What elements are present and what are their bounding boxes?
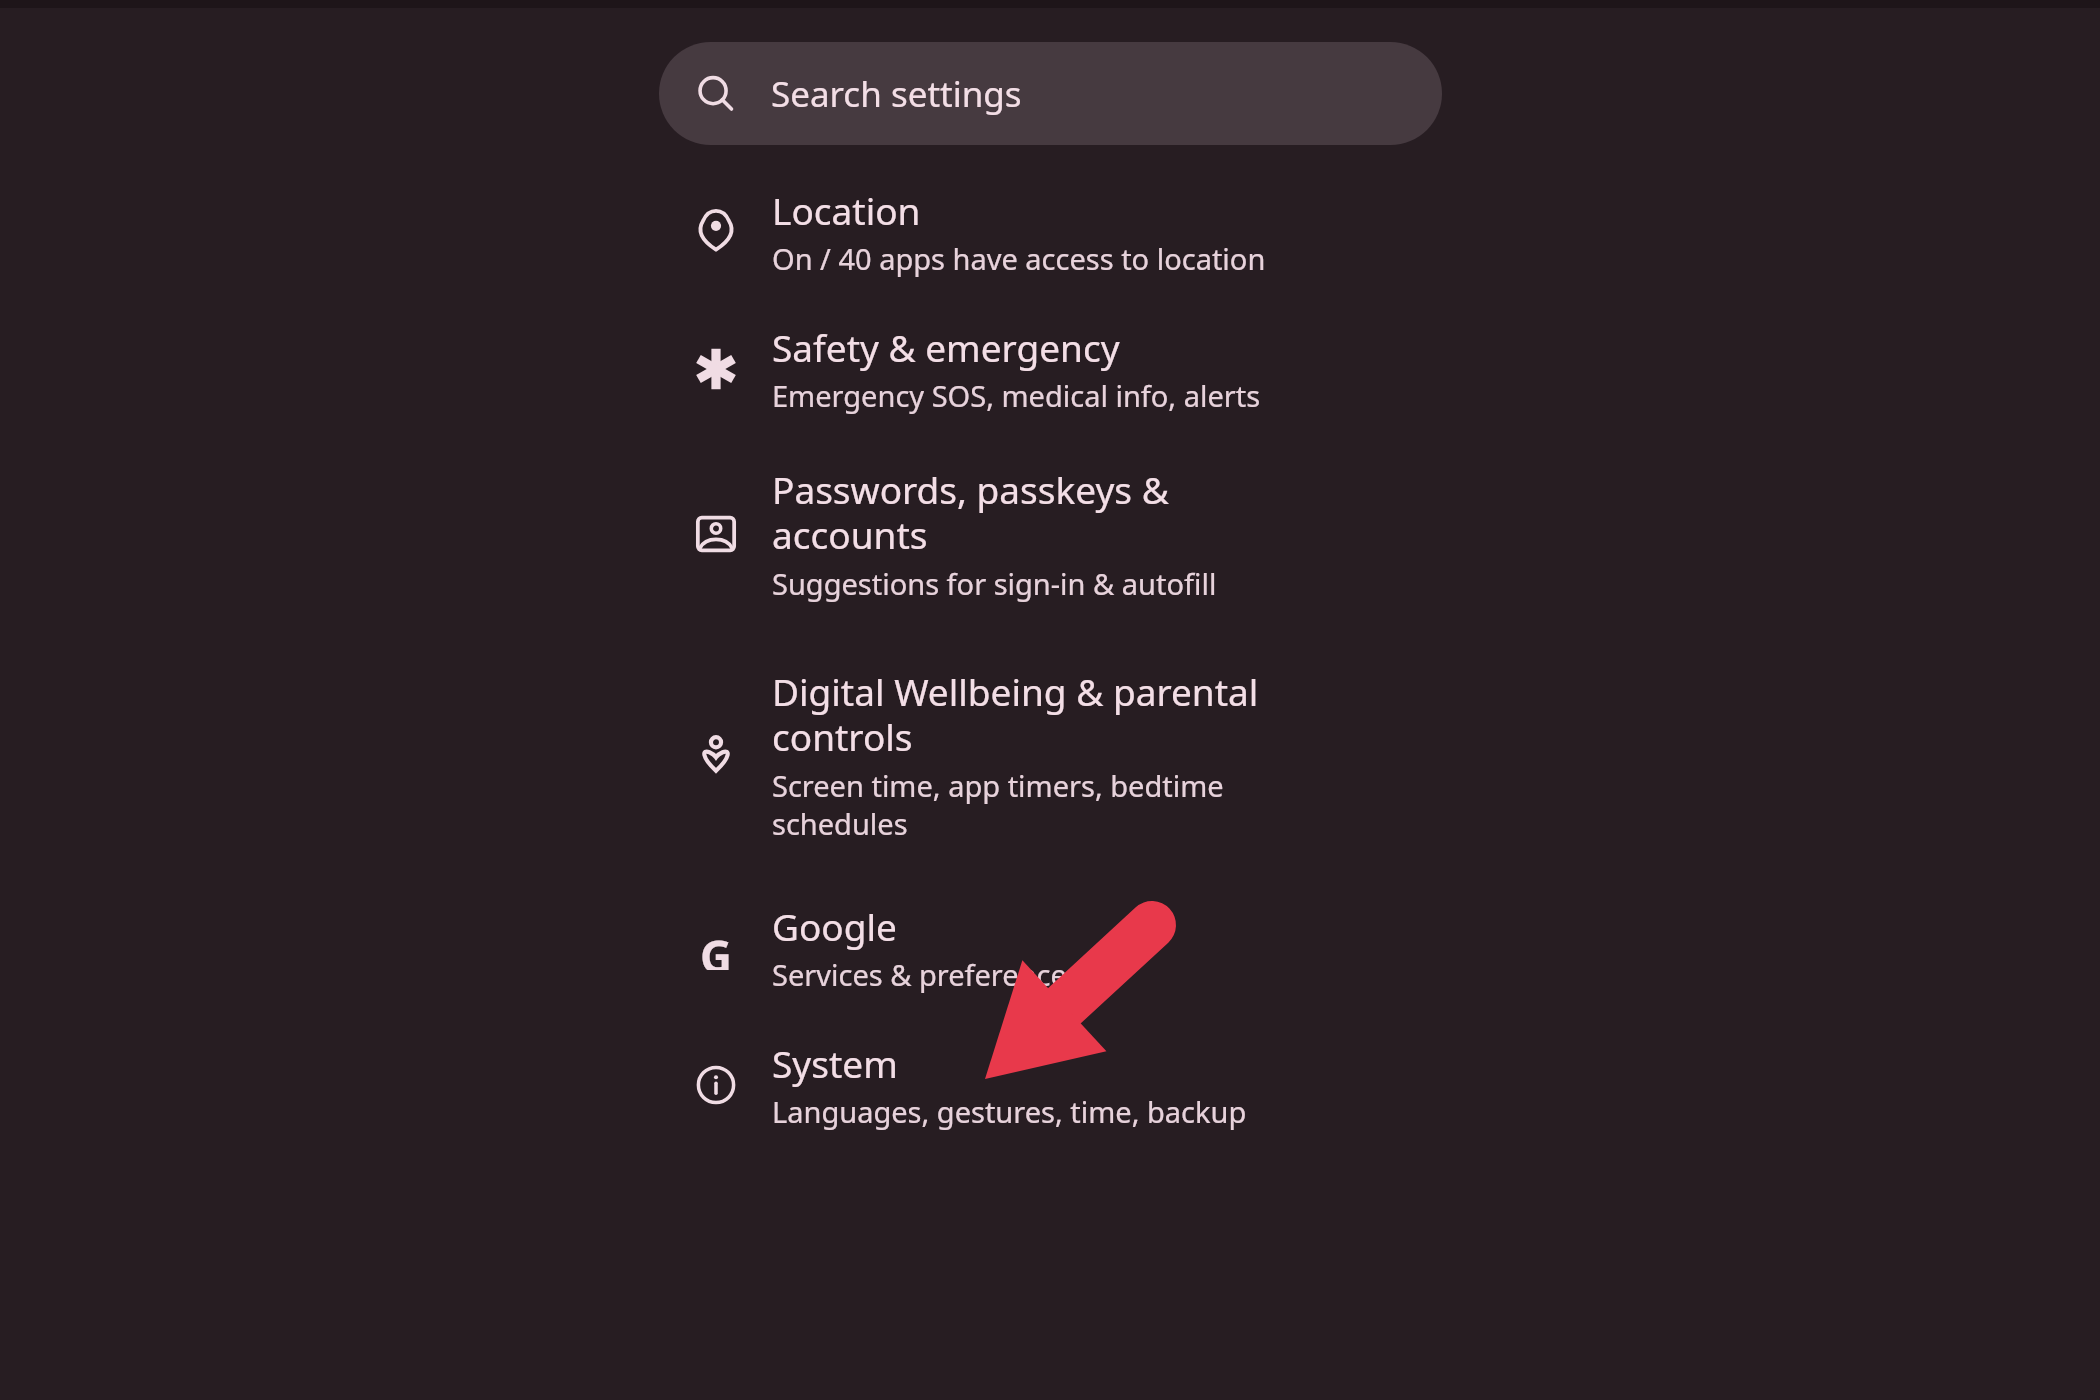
staticText: Services & preferences xyxy=(772,955,1081,994)
staticText: Languages, gestures, time, backup xyxy=(772,1092,1247,1131)
button[interactable]: Search settings xyxy=(659,42,1442,145)
button[interactable]: Digital Wellbeing & parental controls xyxy=(659,630,1442,879)
staticText: Google xyxy=(772,901,897,951)
staticText: Digital Wellbeing & parental controls xyxy=(772,666,1259,762)
staticText: G xyxy=(700,926,732,970)
staticText: Search settings xyxy=(771,70,1022,118)
staticText: On / 40 apps have access to location xyxy=(772,239,1266,278)
staticText: Location xyxy=(772,185,921,235)
button[interactable]: System xyxy=(659,1016,1442,1153)
staticText: Emergency SOS, medical info, alerts xyxy=(772,376,1261,415)
staticText: Passwords, passkeys & accounts xyxy=(772,464,1169,560)
button[interactable]: G xyxy=(659,879,1442,1016)
staticText: System xyxy=(772,1038,898,1088)
button[interactable]: Passwords, passkeys & accounts xyxy=(659,437,1442,630)
staticText: Safety & emergency xyxy=(772,322,1120,372)
other: Annotation arrow pointing at Google xyxy=(0,0,2100,1400)
staticText: Screen time, app timers, bedtime schedul… xyxy=(772,766,1224,843)
button[interactable]: Location xyxy=(659,163,1442,300)
staticText: Suggestions for sign-in & autofill xyxy=(772,564,1217,603)
button[interactable]: Safety & emergency xyxy=(659,300,1442,437)
